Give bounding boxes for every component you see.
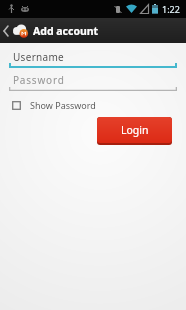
staticText: Show Password [30,99,96,111]
button[interactable]: Login [97,117,172,143]
button[interactable]: Username [13,50,65,64]
button[interactable]: Add account [0,18,186,43]
button[interactable]: Password [13,73,65,87]
staticText: Login [121,123,149,137]
button[interactable]: Show Password [12,99,96,111]
staticText: Add account [33,24,99,38]
staticText: 1:22 [162,3,180,15]
